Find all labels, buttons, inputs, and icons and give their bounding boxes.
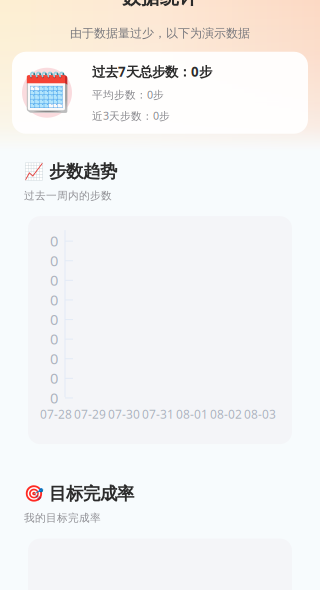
staticText: 0 bbox=[50, 349, 58, 368]
staticText: 🗓️ bbox=[23, 71, 71, 115]
staticText: 0 bbox=[50, 290, 58, 309]
staticText: 我的目标完成率 bbox=[24, 511, 101, 524]
staticText: 08-02 bbox=[210, 406, 242, 422]
staticText: 07-28 bbox=[40, 406, 72, 422]
staticText: 0 bbox=[50, 270, 58, 290]
staticText: 0 bbox=[50, 368, 58, 388]
staticText: 0 bbox=[50, 231, 58, 251]
staticText: 目标完成率 bbox=[49, 483, 134, 504]
staticText: 07-31 bbox=[142, 406, 174, 422]
staticText: 0 bbox=[50, 388, 58, 407]
staticText: 🎯 bbox=[24, 485, 44, 503]
staticText: 过去7天总步数：0步 bbox=[92, 63, 212, 80]
staticText: 0 bbox=[50, 329, 58, 349]
staticText: 近3天步数：0步 bbox=[92, 109, 170, 123]
staticText: 平均步数：0步 bbox=[92, 87, 164, 102]
staticText: 过去一周内的步数 bbox=[24, 189, 112, 202]
staticText: 07-29 bbox=[74, 406, 106, 422]
staticText: 0 bbox=[50, 251, 58, 270]
staticText: 08-03 bbox=[244, 406, 276, 422]
staticText: 数据统计 bbox=[122, 0, 198, 9]
staticText: 0 bbox=[50, 310, 58, 329]
staticText: 步数趋势 bbox=[49, 161, 117, 182]
staticText: 📈 bbox=[24, 162, 44, 180]
staticText: 08-01 bbox=[176, 406, 208, 422]
staticText: 07-30 bbox=[108, 406, 140, 422]
staticText: 由于数据量过少，以下为演示数据 bbox=[70, 26, 250, 41]
